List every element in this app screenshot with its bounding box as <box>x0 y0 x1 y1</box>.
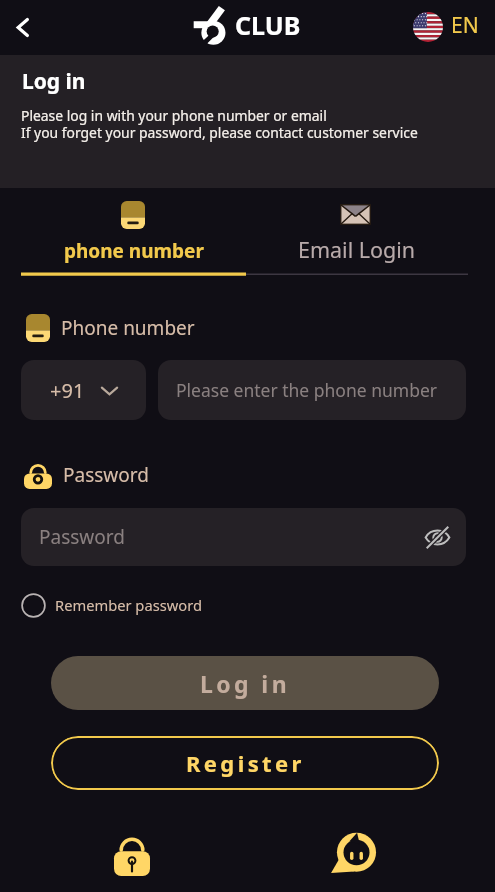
staticText: Remember password <box>55 595 202 615</box>
staticText: Email Login <box>298 235 416 264</box>
button[interactable]: Log in <box>51 656 439 710</box>
staticText: Log in <box>22 67 86 96</box>
button[interactable]: Remember password <box>21 591 202 619</box>
button[interactable]: Security <box>106 830 158 878</box>
staticText: Log in <box>200 668 290 699</box>
staticText: Please log in with your phone number or … <box>21 106 418 142</box>
button[interactable]: Please enter the phone number <box>158 360 466 420</box>
button[interactable]: Email Login <box>246 190 468 276</box>
button[interactable]: Register <box>51 736 439 790</box>
button[interactable]: Password <box>21 508 466 566</box>
staticText: Please enter the phone number <box>176 378 438 402</box>
staticText: EN <box>451 11 479 40</box>
button[interactable]: Show password <box>417 517 457 557</box>
staticText: Phone number <box>61 315 195 341</box>
button[interactable]: phone number <box>21 190 246 276</box>
button[interactable]: +91 <box>21 360 146 420</box>
staticText: +91 <box>50 377 85 404</box>
staticText: Password <box>63 462 149 488</box>
staticText: Register <box>186 748 305 778</box>
button[interactable]: EN <box>413 13 479 43</box>
staticText: phone number <box>64 238 204 264</box>
staticText: CLUB <box>235 8 301 42</box>
button[interactable]: Back <box>2 6 46 50</box>
staticText: Password <box>39 524 125 550</box>
button[interactable]: Customer service <box>333 830 379 876</box>
